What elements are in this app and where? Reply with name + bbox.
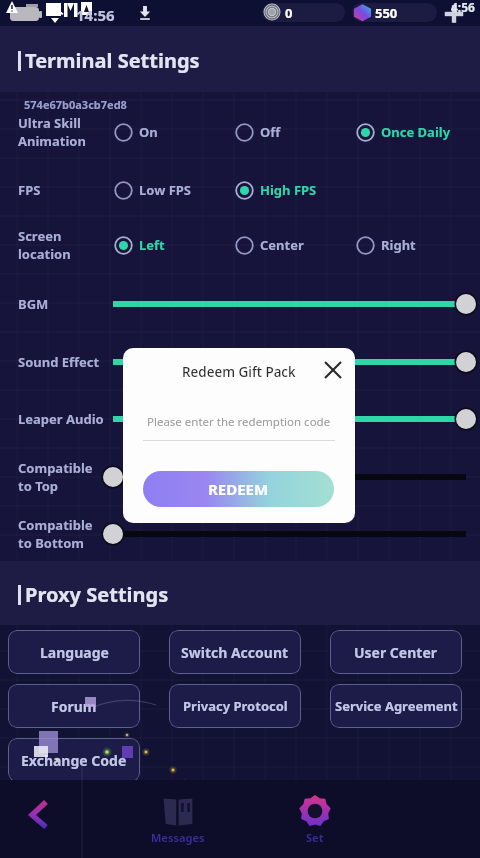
- staticText: FPS: [18, 181, 41, 199]
- button[interactable]: [108, 514, 480, 554]
- button[interactable]: High FPS: [235, 170, 356, 210]
- button[interactable]: [108, 342, 480, 382]
- staticText: Leaper Audio: [18, 410, 104, 428]
- staticText: Messages: [151, 830, 205, 845]
- button[interactable]: REDEEM: [143, 471, 334, 507]
- staticText: 0: [285, 4, 293, 22]
- button[interactable]: Center: [235, 225, 356, 265]
- staticText: Screen location: [18, 227, 71, 263]
- staticText: Terminal Settings: [25, 47, 200, 74]
- staticText: Proxy Settings: [25, 581, 169, 608]
- staticText: REDEEM: [208, 479, 269, 499]
- staticText: 574e67b0a3cb7ed8: [24, 97, 127, 112]
- staticText: Once Daily: [381, 123, 451, 141]
- staticText: Compatible to Top: [18, 459, 93, 495]
- staticText: Compatible to Bottom: [18, 516, 93, 552]
- button[interactable]: Back: [12, 788, 62, 838]
- staticText: Please enter the redemption code: [147, 414, 331, 430]
- staticText: 550: [375, 4, 398, 22]
- staticText: Privacy Protocol: [183, 697, 288, 715]
- staticText: Language: [40, 643, 109, 662]
- button[interactable]: Set: [275, 790, 355, 848]
- staticText: Right: [381, 236, 416, 254]
- staticText: Redeem Gift Pack: [182, 363, 296, 381]
- staticText: Ultra Skill Animation: [18, 114, 86, 150]
- button[interactable]: Language: [8, 630, 140, 674]
- staticText: 4:56: [451, 0, 475, 15]
- staticText: 14:56: [76, 5, 115, 25]
- button[interactable]: Service Agreement: [330, 684, 462, 728]
- button[interactable]: [108, 284, 480, 324]
- button[interactable]: Switch Account: [169, 630, 301, 674]
- staticText: BGM: [18, 295, 49, 313]
- staticText: Exchange Code: [21, 751, 127, 770]
- staticText: Low FPS: [139, 181, 192, 199]
- button[interactable]: Off: [235, 112, 356, 152]
- staticText: Off: [260, 123, 281, 141]
- button[interactable]: Exchange Code: [8, 738, 140, 782]
- button[interactable]: Right: [356, 225, 477, 265]
- staticText: User Center: [354, 643, 438, 662]
- staticText: Center: [260, 236, 304, 254]
- button[interactable]: On: [114, 112, 235, 152]
- staticText: Service Agreement: [335, 697, 458, 715]
- button[interactable]: User Center: [330, 630, 462, 674]
- staticText: Forum: [51, 697, 97, 716]
- staticText: Set: [306, 830, 324, 845]
- staticText: On: [139, 123, 158, 141]
- button[interactable]: Once Daily: [356, 112, 477, 152]
- staticText: Switch Account: [181, 643, 289, 662]
- staticText: Left: [139, 236, 165, 254]
- button[interactable]: [108, 399, 480, 439]
- button[interactable]: Forum: [8, 684, 140, 728]
- button[interactable]: Close: [317, 354, 349, 386]
- button[interactable]: Privacy Protocol: [169, 684, 301, 728]
- button[interactable]: Messages: [138, 790, 218, 848]
- button[interactable]: [108, 457, 480, 497]
- button[interactable]: Low FPS: [114, 170, 235, 210]
- staticText: Sound Effect: [18, 353, 100, 371]
- staticText: High FPS: [260, 181, 317, 199]
- button[interactable]: Left: [114, 225, 235, 265]
